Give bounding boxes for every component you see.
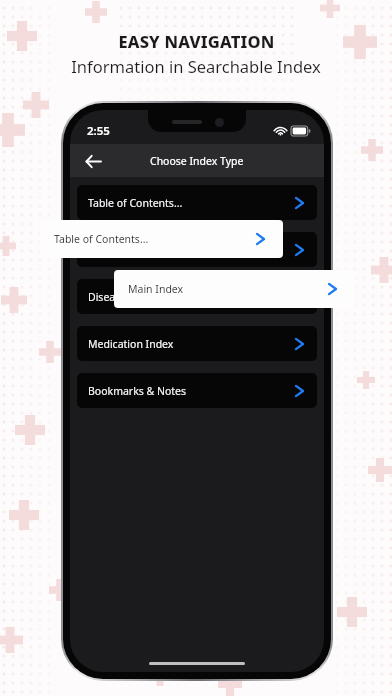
button[interactable]: Disease… [77,279,317,314]
staticText: Table of Contents... [54,232,149,246]
staticText: Information in Searchable Index [71,55,321,77]
button[interactable]: Table of Contents... [40,220,283,258]
button[interactable]: Bookmarks & Notes [77,373,317,408]
staticText: Main Index [128,282,184,296]
button[interactable]: Main Index [114,270,355,308]
staticText: Disease… [88,290,135,304]
staticText: Choose Index Type [150,154,244,168]
button[interactable]: Medication Index [77,326,317,361]
button[interactable] [77,232,317,267]
button[interactable]: Table of Contents... [77,185,317,220]
staticText: Table of Contents... [88,196,183,210]
staticText: Medication Index [88,337,174,351]
staticText: EASY NAVIGATION [118,30,275,52]
staticText: 2:55 [87,123,110,139]
staticText: Bookmarks & Notes [88,384,187,398]
button[interactable]: Back [78,146,108,176]
